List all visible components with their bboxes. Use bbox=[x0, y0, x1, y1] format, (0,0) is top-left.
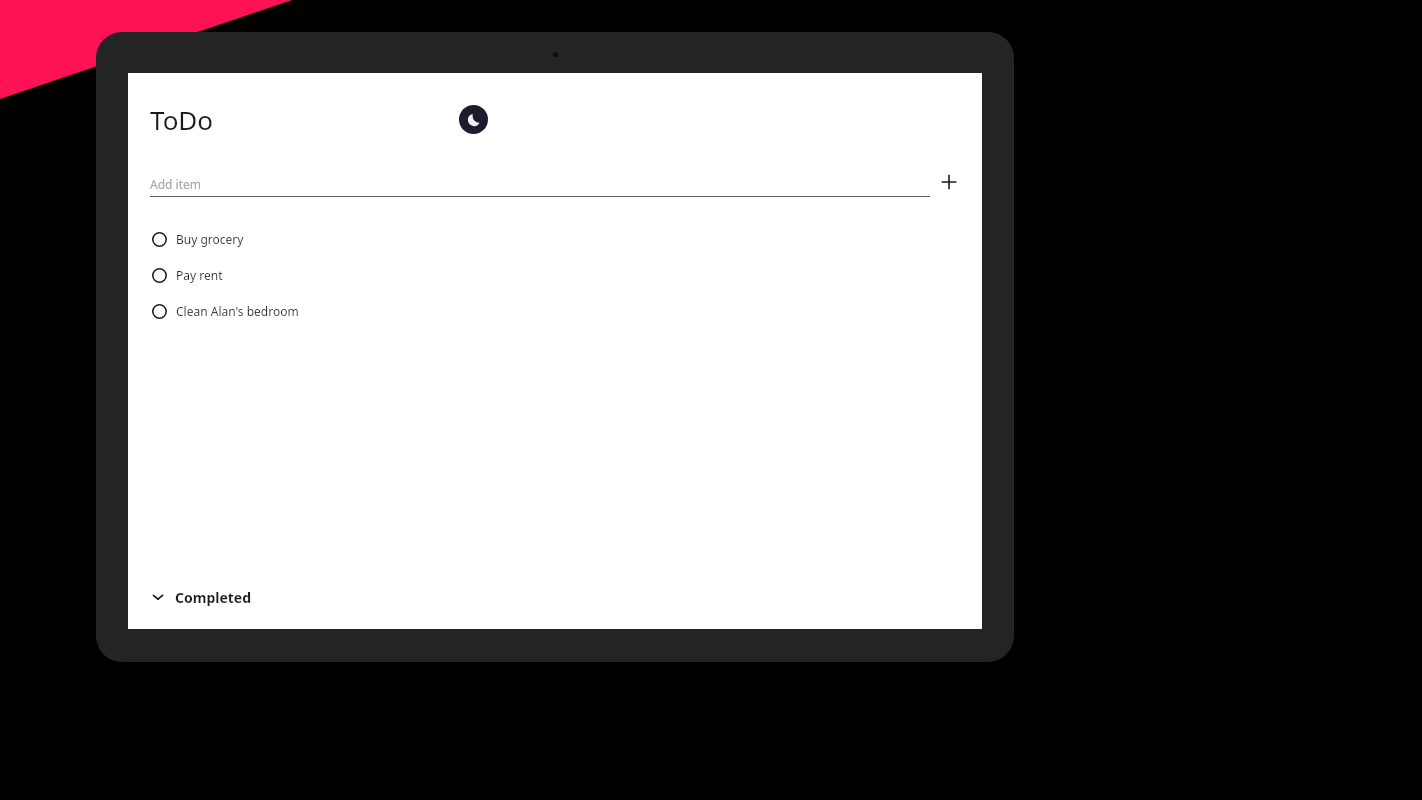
staticText: ToDo bbox=[150, 102, 214, 137]
staticText: Buy grocery bbox=[176, 231, 244, 247]
button[interactable]: Completed bbox=[128, 579, 982, 615]
button[interactable]: Pay rent bbox=[128, 257, 982, 293]
staticText: Pay rent bbox=[176, 267, 223, 283]
button[interactable]: Add item bbox=[150, 172, 930, 196]
staticText: Completed bbox=[175, 588, 252, 607]
button[interactable]: Add item bbox=[930, 167, 968, 197]
staticText: Add item bbox=[150, 176, 201, 192]
button[interactable]: Clean Alan's bedroom bbox=[128, 293, 982, 329]
button[interactable]: Toggle dark mode bbox=[459, 105, 488, 134]
button[interactable]: Buy grocery bbox=[128, 221, 982, 257]
staticText: Clean Alan's bedroom bbox=[176, 303, 299, 319]
